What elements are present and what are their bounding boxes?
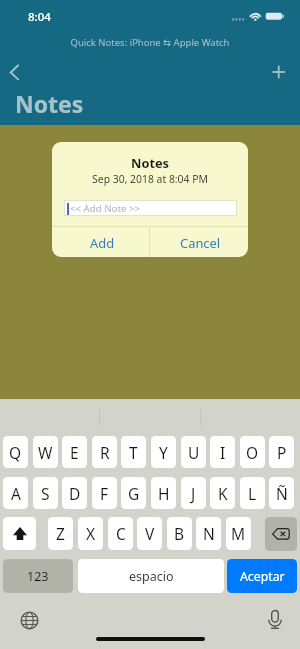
button[interactable]: Dictation (260, 605, 290, 635)
staticText: Aceptar (240, 568, 285, 585)
button[interactable]: I (210, 436, 235, 468)
button[interactable]: R (92, 436, 117, 468)
staticText: Add (90, 234, 115, 252)
staticText: P (277, 442, 287, 463)
button[interactable]: G (121, 477, 146, 509)
button[interactable]: J (181, 477, 206, 509)
staticText: U (188, 442, 200, 463)
staticText: I (220, 442, 226, 463)
staticText: N (203, 523, 215, 544)
staticText: A (11, 483, 21, 504)
button[interactable]: P (269, 436, 294, 468)
staticText: Notes (15, 88, 84, 119)
staticText: Sep 30, 2018 at 8:04 PM (52, 172, 248, 186)
staticText: D (69, 483, 81, 504)
button[interactable]: << Add Note >> (64, 200, 237, 216)
button[interactable]: X (78, 517, 103, 550)
button[interactable]: E (62, 436, 87, 468)
button[interactable]: Q (3, 436, 28, 468)
staticText: R (100, 442, 110, 463)
staticText: M (231, 523, 246, 544)
button[interactable]: F (92, 477, 117, 509)
button[interactable]: Change keyboard (14, 605, 44, 635)
button[interactable]: Cancel (150, 227, 248, 257)
staticText: Ñ (276, 483, 288, 504)
button[interactable]: Add note (264, 58, 294, 88)
staticText: Y (159, 442, 168, 463)
staticText: Z (56, 523, 65, 544)
staticText: T (129, 442, 138, 463)
button[interactable]: 123 (3, 559, 73, 593)
button[interactable]: S (33, 477, 58, 509)
staticText: X (86, 523, 96, 544)
button[interactable]: Add (52, 227, 149, 257)
button[interactable]: L (240, 477, 265, 509)
staticText: Notes (52, 154, 248, 171)
button[interactable] (3, 517, 36, 550)
staticText: Quick Notes: iPhone ⇆ Apple Watch (0, 36, 300, 49)
button[interactable]: C (108, 517, 133, 550)
staticText: G (128, 483, 140, 504)
staticText: K (218, 483, 228, 504)
staticText: Cancel (180, 234, 221, 252)
button[interactable]: espacio (78, 559, 224, 593)
staticText: E (70, 442, 79, 463)
button[interactable]: W (33, 436, 58, 468)
button[interactable]: Y (151, 436, 176, 468)
staticText: S (41, 483, 50, 504)
button[interactable]: N (196, 517, 221, 550)
staticText: Q (9, 442, 22, 463)
button[interactable]: Ñ (269, 477, 294, 509)
staticText: L (248, 483, 257, 504)
button[interactable]: K (210, 477, 235, 509)
staticText: 8:04 (28, 9, 51, 25)
staticText: B (174, 523, 185, 544)
staticText: C (116, 523, 126, 544)
button[interactable]: B (167, 517, 192, 550)
staticText: V (145, 523, 155, 544)
staticText: F (100, 483, 109, 504)
button[interactable]: H (151, 477, 176, 509)
button[interactable]: V (137, 517, 162, 550)
button[interactable]: M (226, 517, 251, 550)
button[interactable]: Z (48, 517, 73, 550)
staticText: H (158, 483, 170, 504)
staticText: O (246, 442, 259, 463)
button[interactable]: Aceptar (227, 559, 297, 593)
staticText: espacio (129, 568, 174, 585)
button[interactable]: A (3, 477, 28, 509)
button[interactable] (265, 517, 297, 551)
button[interactable]: Back (1, 58, 31, 88)
staticText: << Add Note >> (70, 202, 141, 215)
button[interactable]: O (240, 436, 265, 468)
staticText: J (191, 483, 196, 504)
staticText: W (38, 442, 53, 463)
button[interactable]: T (121, 436, 146, 468)
staticText: 123 (27, 568, 49, 585)
button[interactable]: U (181, 436, 206, 468)
button[interactable]: D (62, 477, 87, 509)
